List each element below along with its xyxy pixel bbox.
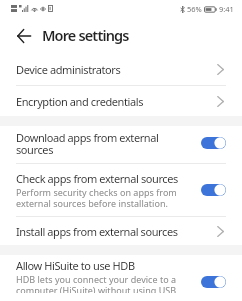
button[interactable]: Toggle setting [201, 276, 226, 288]
button[interactable]: Encryption and credentials [0, 86, 242, 116]
button[interactable]: Check apps from external sources [0, 164, 242, 216]
button[interactable]: Install apps from external sources [0, 217, 242, 245]
button[interactable]: Allow HiSuite to use HDB [0, 255, 242, 301]
button[interactable]: Toggle setting [201, 137, 226, 149]
staticText: HDB lets you connect your device to a co… [16, 273, 193, 293]
staticText: Encryption and credentials [16, 94, 217, 109]
staticText: Allow HiSuite to use HDB [16, 258, 135, 273]
button[interactable]: Device administrators [0, 53, 242, 85]
staticText: More settings [42, 25, 129, 45]
staticText: Device administrators [16, 62, 217, 77]
staticText: Perform security checks on apps from ext… [16, 186, 193, 210]
staticText: Download apps from external sources [16, 130, 193, 157]
staticText: 9:41 [219, 4, 234, 14]
button[interactable]: Back [11, 22, 37, 48]
button[interactable]: Toggle setting [201, 184, 226, 196]
staticText: 56% [187, 4, 202, 14]
staticText: Install apps from external sources [16, 224, 217, 239]
button[interactable]: Download apps from external sources [0, 126, 242, 163]
staticText: Check apps from external sources [16, 171, 178, 186]
